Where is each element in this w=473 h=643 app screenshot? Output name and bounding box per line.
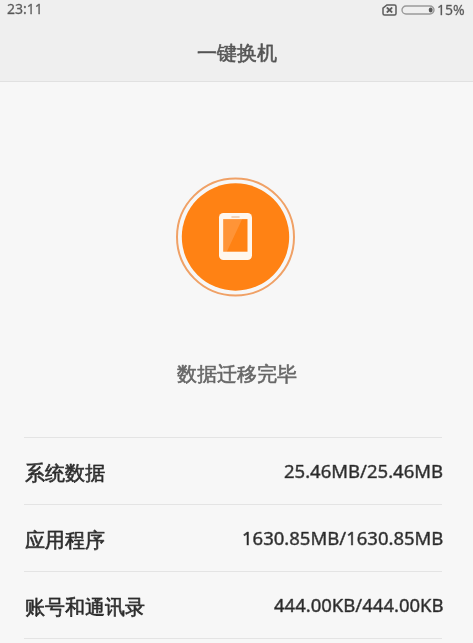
- button[interactable]: 账号和通讯录: [0, 572, 473, 638]
- staticText: 25.46MB/25.46MB: [284, 458, 444, 483]
- staticText: 23:11: [7, 0, 43, 18]
- staticText: 数据迁移完毕: [177, 362, 297, 387]
- staticText: 系统数据: [25, 461, 105, 486]
- staticText: 15%: [437, 0, 465, 19]
- other: Transfer complete: [174, 175, 298, 299]
- staticText: 444.00KB/444.00KB: [274, 592, 444, 617]
- staticText: 一键换机: [197, 41, 277, 66]
- staticText: 15%: [437, 0, 465, 19]
- button[interactable]: 应用程序: [0, 505, 473, 571]
- staticText: 一键换机: [197, 41, 277, 66]
- staticText: 应用程序: [25, 528, 105, 553]
- other: Battery 15 percent: [402, 6, 434, 14]
- staticText: 1630.85MB/1630.85MB: [242, 525, 444, 550]
- staticText: 账号和通讯录: [25, 595, 145, 620]
- staticText: 账号和通讯录: [25, 595, 145, 620]
- staticText: 数据迁移完毕: [177, 362, 297, 387]
- staticText: 23:11: [7, 0, 43, 18]
- other: No SIM card: [383, 5, 396, 15]
- staticText: 444.00KB/444.00KB: [274, 592, 444, 617]
- staticText: 25.46MB/25.46MB: [284, 458, 444, 483]
- staticText: 系统数据: [25, 461, 105, 486]
- staticText: 应用程序: [25, 528, 105, 553]
- button[interactable]: 系统数据: [0, 438, 473, 504]
- staticText: 1630.85MB/1630.85MB: [242, 525, 444, 550]
